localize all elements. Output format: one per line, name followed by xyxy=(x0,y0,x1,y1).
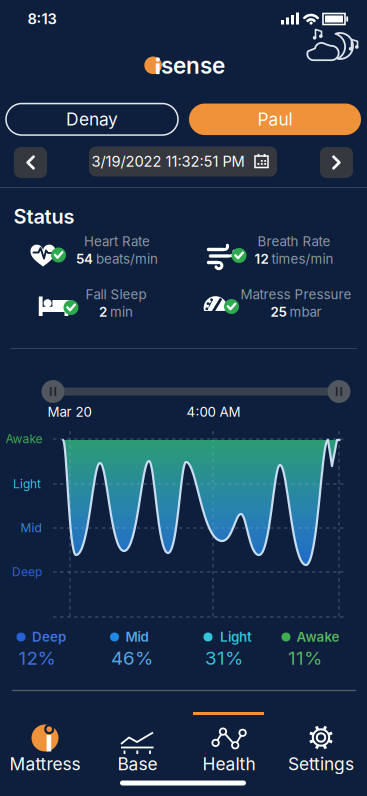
staticText: Denay xyxy=(66,109,118,129)
staticText: Mid xyxy=(125,629,148,645)
button[interactable]: Base xyxy=(91,703,183,789)
staticText: Deep xyxy=(32,629,66,645)
staticText: Deep xyxy=(12,565,42,579)
staticText: Fall Sleep xyxy=(85,287,146,302)
button[interactable]: Health xyxy=(183,703,275,789)
staticText: Matress Pressure xyxy=(240,287,351,302)
button[interactable]: Settings xyxy=(275,703,367,789)
staticText: 3/19/2022 11:32:51 PM xyxy=(91,153,244,170)
button[interactable] xyxy=(14,147,47,178)
staticText: 4:00 AM xyxy=(186,404,240,420)
button[interactable]: 3/19/2022 11:32:51 PM xyxy=(89,146,277,176)
staticText: Mid xyxy=(20,521,41,535)
staticText: times/min xyxy=(271,251,333,267)
staticText: 12 xyxy=(254,251,268,267)
staticText: Mar 20 xyxy=(47,404,91,420)
staticText: 12% xyxy=(18,647,55,669)
staticText: 46% xyxy=(111,647,153,669)
staticText: Light xyxy=(220,629,252,645)
staticText: beats/min xyxy=(96,251,158,267)
staticText: Breath Rate xyxy=(257,234,330,249)
staticText: 2 xyxy=(99,304,107,320)
staticText: 11% xyxy=(288,647,322,669)
staticText: sense xyxy=(161,52,225,79)
staticText: 25 xyxy=(270,304,286,320)
staticText: min xyxy=(110,304,133,320)
staticText: Base xyxy=(117,754,157,774)
staticText: 8:13 xyxy=(27,10,56,28)
staticText: Light xyxy=(13,477,41,491)
staticText: Settings xyxy=(288,754,354,774)
staticText: Health xyxy=(202,754,255,774)
button[interactable] xyxy=(320,147,353,178)
staticText: Status xyxy=(13,205,74,228)
staticText: Mattress xyxy=(9,754,80,774)
button[interactable]: Denay xyxy=(6,103,178,135)
staticText: Heart Rate xyxy=(84,234,150,249)
staticText: mbar xyxy=(289,304,321,320)
staticText: Awake xyxy=(296,629,339,645)
staticText: 54 xyxy=(76,251,93,267)
staticText: Paul xyxy=(257,109,292,129)
button[interactable]: Paul xyxy=(189,103,361,135)
staticText: Awake xyxy=(5,432,42,446)
staticText: 31% xyxy=(205,647,243,669)
button[interactable]: Mattress xyxy=(0,703,92,789)
